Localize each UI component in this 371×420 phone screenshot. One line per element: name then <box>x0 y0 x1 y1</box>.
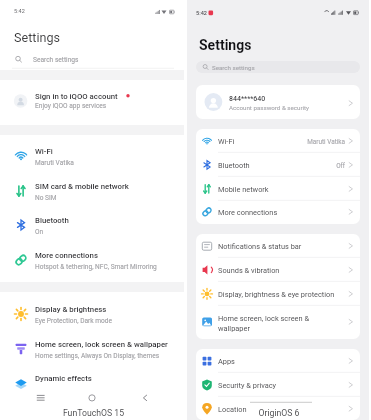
staticText: 5:42 <box>196 10 208 17</box>
staticText: More connections <box>35 251 98 260</box>
button[interactable]: Home <box>85 391 99 405</box>
button[interactable]: Wi-Fi <box>196 129 360 153</box>
staticText: 844****640 <box>229 95 266 103</box>
button[interactable]: Notifications & status bar <box>196 234 360 258</box>
button[interactable]: 844****640 <box>196 85 360 119</box>
button[interactable]: Back <box>138 391 152 405</box>
button[interactable]: Bluetooth <box>0 208 185 243</box>
staticText: No SIM <box>35 194 57 202</box>
staticText: Bluetooth <box>218 161 250 170</box>
button[interactable]: Security & privacy <box>196 373 360 397</box>
button[interactable]: Apps <box>196 349 360 373</box>
button[interactable]: Search settings <box>0 50 185 68</box>
button[interactable]: More connections <box>196 200 360 224</box>
staticText: Account password & security <box>229 104 309 111</box>
staticText: SIM card & mobile network <box>35 182 129 191</box>
staticText: Eye Protection, Dark mode <box>35 317 113 325</box>
staticText: Mobile network <box>218 185 269 194</box>
staticText: Location <box>218 405 247 414</box>
staticText: Settings <box>199 37 252 53</box>
staticText: OriginOS 6 <box>187 408 371 418</box>
staticText: Search settings <box>212 64 255 71</box>
staticText: Search settings <box>33 56 79 64</box>
staticText: Sign in to iQOO account <box>35 92 118 101</box>
staticText: Display, brightness & eye protection <box>218 290 335 299</box>
staticText: Dynamic effects <box>35 374 92 383</box>
staticText: 5:42 <box>14 8 25 15</box>
button[interactable]: Search settings <box>196 61 360 73</box>
button[interactable]: Mobile network <box>196 177 360 201</box>
staticText: Home screen, lock screen & wallpaper <box>35 340 168 349</box>
button[interactable]: Display & brightness <box>0 297 185 332</box>
staticText: Apps <box>218 357 235 366</box>
staticText: Maruti Vatika <box>196 138 345 146</box>
button[interactable]: Dynamic effects <box>0 366 185 401</box>
button[interactable]: Home screen, lock screen & <box>196 305 360 339</box>
staticText: Notifications & status bar <box>218 242 302 251</box>
button[interactable]: Location <box>196 397 360 420</box>
button[interactable]: Recent apps <box>31 391 53 405</box>
staticText: Enjoy iQOO app services <box>35 102 107 110</box>
button[interactable]: Sign in to iQOO account <box>0 80 185 125</box>
staticText: Home screen, lock screen & <box>218 314 309 323</box>
staticText: Hotspot & tethering, NFC, Smart Mirrorin… <box>35 263 157 271</box>
staticText: Home settings, Always On Display, themes <box>35 352 160 360</box>
staticText: On <box>35 228 44 236</box>
staticText: Wi-Fi <box>35 147 53 156</box>
button[interactable]: More connections <box>0 243 185 278</box>
staticText: Wi-Fi <box>218 137 235 146</box>
staticText: Off <box>196 162 345 170</box>
button[interactable]: Sounds & vibration <box>196 258 360 282</box>
button[interactable]: Home screen, lock screen & wallpaper <box>0 332 185 367</box>
staticText: Security & privacy <box>218 381 277 390</box>
button[interactable]: SIM card & mobile network <box>0 174 185 209</box>
staticText: Bluetooth <box>35 216 69 225</box>
button[interactable]: Wi-Fi <box>0 139 185 174</box>
staticText: More connections <box>218 208 278 217</box>
staticText: Display & brightness <box>35 305 107 314</box>
button[interactable]: Display, brightness & eye protection <box>196 282 360 306</box>
staticText: wallpaper <box>218 324 250 333</box>
button[interactable]: Bluetooth <box>196 153 360 177</box>
staticText: Sounds & vibration <box>218 266 280 275</box>
staticText: Maruti Vatika <box>35 159 74 167</box>
staticText: FunTouchOS 15 <box>1 408 186 418</box>
staticText: Settings <box>14 30 60 45</box>
